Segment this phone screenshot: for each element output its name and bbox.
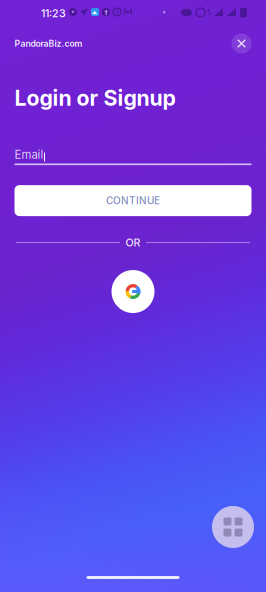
- button[interactable]: Apps: [212, 506, 254, 548]
- staticText: CONTINUE: [106, 195, 160, 207]
- button[interactable]: Continue with Google: [111, 270, 154, 313]
- staticText: OR: [125, 236, 140, 249]
- staticText: Email: [14, 148, 43, 161]
- button[interactable]: Close: [231, 33, 251, 53]
- staticText: PandoraBiz.com: [14, 38, 82, 49]
- staticText: Login or Signup: [14, 85, 175, 111]
- button[interactable]: CONTINUE: [14, 185, 251, 216]
- staticText: 11:23: [41, 7, 66, 20]
- staticText: 5: [207, 8, 211, 17]
